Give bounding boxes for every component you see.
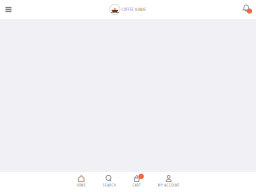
button[interactable]: CART bbox=[132, 172, 141, 192]
button[interactable]: SEARCH bbox=[103, 172, 116, 192]
staticText: MY ACCOUNT bbox=[158, 183, 180, 187]
staticText: COFFEE & BAKE bbox=[122, 7, 146, 12]
button[interactable]: HOME bbox=[76, 172, 86, 192]
staticText: CART bbox=[132, 183, 141, 187]
staticText: HOME bbox=[76, 183, 86, 187]
staticText: SEARCH bbox=[103, 183, 116, 187]
button[interactable]: COFFEE & BAKE bbox=[110, 4, 146, 15]
button[interactable]: Menu bbox=[0, 0, 17, 19]
button[interactable]: MY ACCOUNT bbox=[158, 172, 180, 192]
button[interactable]: Notifications bbox=[239, 0, 256, 19]
